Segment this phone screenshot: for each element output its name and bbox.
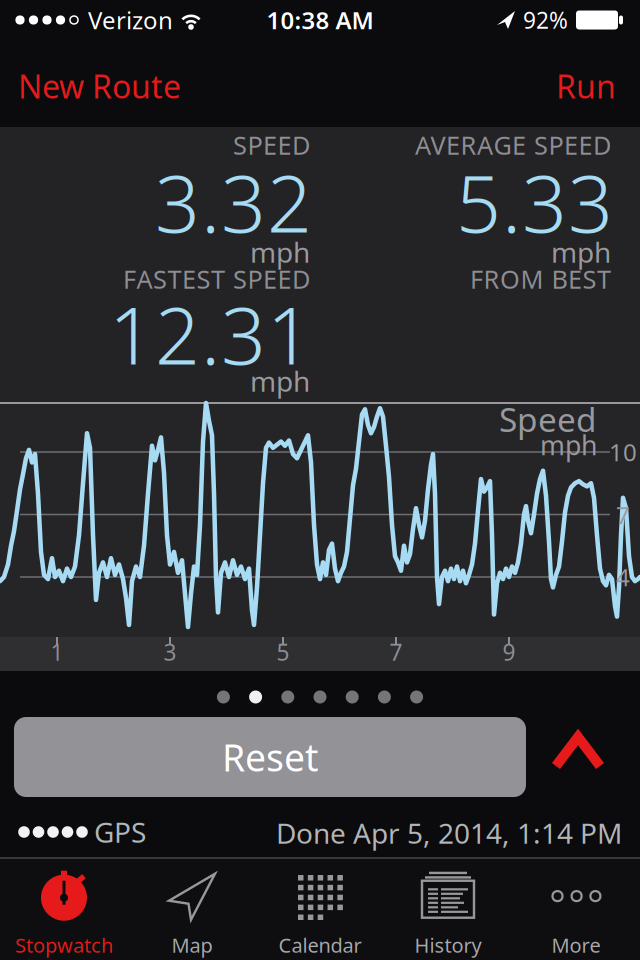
staticText: 9 (502, 637, 515, 667)
staticText: Calendar (278, 932, 361, 958)
staticText: FASTEST SPEED (123, 262, 310, 296)
staticText: 1 (50, 637, 63, 667)
staticText: 5.33 (456, 150, 613, 254)
staticText: Run (556, 65, 616, 107)
staticText: More (551, 932, 600, 958)
staticText: mph (540, 427, 597, 463)
button[interactable]: Reset (14, 717, 526, 797)
staticText: Reset (222, 732, 318, 782)
staticText: Speed (499, 397, 597, 441)
staticText: New Route (18, 65, 181, 107)
staticText: 3 (163, 637, 176, 667)
button[interactable]: Run (556, 65, 616, 107)
staticText: FROM BEST (470, 262, 611, 296)
button[interactable]: Calendar (256, 864, 384, 960)
staticText: mph (250, 233, 310, 271)
staticText: GPS (94, 813, 146, 851)
staticText: SPEED (233, 128, 310, 162)
staticText: 12.31 (109, 282, 312, 386)
staticText: Map (171, 932, 212, 958)
staticText: 7 (616, 499, 630, 531)
button[interactable]: History (384, 864, 512, 960)
staticText: Done Apr 5, 2014, 1:14 PM (276, 814, 622, 852)
staticText: mph (551, 233, 611, 271)
staticText: AVERAGE SPEED (415, 128, 611, 162)
button[interactable]: New Route (18, 65, 181, 107)
staticText: Stopwatch (15, 932, 113, 958)
staticText: mph (250, 362, 310, 400)
staticText: 3.32 (155, 150, 312, 254)
staticText: 7 (389, 637, 402, 667)
staticText: 5 (276, 637, 289, 667)
button[interactable]: Map (128, 864, 256, 960)
button[interactable]: Stopwatch (0, 864, 128, 960)
staticText: 10:38 AM (266, 4, 373, 36)
staticText: 92% (523, 5, 568, 35)
staticText: 10 (609, 436, 637, 468)
staticText: History (414, 932, 481, 958)
staticText: Verizon (88, 4, 173, 36)
button[interactable]: More (512, 864, 640, 960)
button[interactable]: Expand controls (553, 732, 603, 770)
staticText: 4 (616, 561, 630, 593)
